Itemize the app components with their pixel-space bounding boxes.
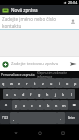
staticText: u <box>50 81 53 86</box>
staticText: v <box>39 103 41 108</box>
button[interactable]: o <box>63 78 71 88</box>
button[interactable]: Recent apps <box>56 126 70 140</box>
button[interactable]: w <box>7 78 15 88</box>
button[interactable]: b <box>44 100 52 110</box>
button[interactable]: Enter <box>65 112 79 124</box>
button[interactable]: i <box>55 78 63 88</box>
button[interactable]: n <box>52 100 60 110</box>
button[interactable]: j <box>51 89 59 99</box>
button[interactable]: k <box>59 89 67 99</box>
button[interactable]: q <box>0 78 7 88</box>
staticText: z <box>42 81 44 86</box>
button[interactable]: Home <box>33 126 47 140</box>
button[interactable]: a <box>3 89 11 99</box>
staticText: Klepnutim zobrazite informace <box>37 71 79 78</box>
staticText: j <box>55 92 56 97</box>
button[interactable]: Symbols <box>0 112 10 124</box>
staticText: . <box>60 116 62 121</box>
button[interactable]: e <box>15 78 23 88</box>
staticText: y <box>15 103 17 108</box>
staticText: Personalizace zapnuta <box>1 73 35 77</box>
button[interactable]: v <box>36 100 44 110</box>
staticText: h <box>46 92 49 97</box>
staticText: s <box>14 92 16 97</box>
button[interactable]: , <box>10 112 18 124</box>
button[interactable]: Messaging <box>2 7 9 14</box>
button[interactable]: g <box>35 89 43 99</box>
staticText: , <box>13 116 15 121</box>
staticText: a <box>6 92 9 97</box>
button[interactable]: Shift <box>0 100 12 110</box>
button[interactable]: m <box>60 100 68 110</box>
staticText: Nová zpráva <box>11 7 38 13</box>
staticText: c <box>31 103 33 108</box>
staticText: e <box>18 81 21 86</box>
staticText: f <box>30 92 32 97</box>
button[interactable]: f <box>27 89 35 99</box>
button[interactable]: z <box>39 78 47 88</box>
staticText: 20:04 <box>68 0 78 5</box>
staticText: d <box>22 92 25 97</box>
staticText: kontaktu <box>2 23 22 29</box>
staticText: w <box>10 81 13 86</box>
staticText: g <box>38 92 41 97</box>
staticText: n <box>55 103 58 108</box>
button[interactable]: Send <box>68 59 78 69</box>
staticText: x <box>23 103 26 108</box>
staticText: b <box>47 103 50 108</box>
staticText: l <box>71 92 72 97</box>
button[interactable]: h <box>43 89 51 99</box>
button[interactable]: Add attachment <box>2 61 9 68</box>
staticText: m <box>62 103 66 108</box>
button[interactable]: Add contact <box>69 18 77 26</box>
button[interactable]: d <box>19 89 27 99</box>
button[interactable]: Backspace <box>68 100 79 110</box>
button[interactable]: s <box>11 89 19 99</box>
staticText: o <box>66 81 69 86</box>
button[interactable]: t <box>31 78 39 88</box>
staticText: p <box>74 81 77 86</box>
button[interactable]: x <box>20 100 28 110</box>
staticText: i <box>59 81 60 86</box>
staticText: Zadejte jméno nebo číslo <box>2 16 56 22</box>
staticText: r <box>26 81 28 86</box>
button[interactable]: y <box>12 100 20 110</box>
staticText: Enter <box>68 116 76 120</box>
button[interactable]: u <box>47 78 55 88</box>
staticText: q <box>2 81 5 86</box>
staticText: ?123 <box>2 116 9 120</box>
staticText: k <box>62 92 65 97</box>
button[interactable]: c <box>28 100 36 110</box>
staticText: t <box>34 81 36 86</box>
button[interactable]: r <box>23 78 31 88</box>
button[interactable]: . <box>57 112 65 124</box>
staticText: Zadejte textovou zprávu <box>11 61 59 67</box>
button[interactable]: p <box>71 78 79 88</box>
button[interactable]: Back <box>9 126 23 140</box>
button[interactable]: l <box>67 89 75 99</box>
